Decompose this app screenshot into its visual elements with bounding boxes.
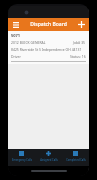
staticText: 2012 BUICK GENERAL	[11, 40, 46, 45]
staticText: 8425 Riverside St S Independence OH 4413…	[11, 47, 82, 52]
staticText: Assigned Calls	[40, 158, 58, 162]
staticText: Driver	[11, 54, 21, 59]
button[interactable]: Emergency Calls	[8, 149, 35, 166]
staticText: Dispatch Board	[30, 21, 67, 28]
button[interactable]: Add	[76, 19, 87, 30]
button[interactable]: 5071	[8, 31, 89, 64]
button[interactable]: Menu	[10, 19, 21, 30]
button[interactable]: Assigned Calls	[35, 149, 62, 166]
staticText: Status: 16	[70, 54, 86, 59]
staticText: Completed Calls	[66, 158, 86, 162]
staticText: 5071	[11, 33, 21, 38]
staticText: Emergency Calls	[12, 158, 32, 162]
staticText: Job# 35	[73, 40, 86, 45]
button[interactable]: Completed Calls	[62, 149, 89, 166]
